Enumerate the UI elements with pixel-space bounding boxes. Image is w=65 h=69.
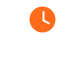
button[interactable]: Recents [29, 6, 55, 32]
